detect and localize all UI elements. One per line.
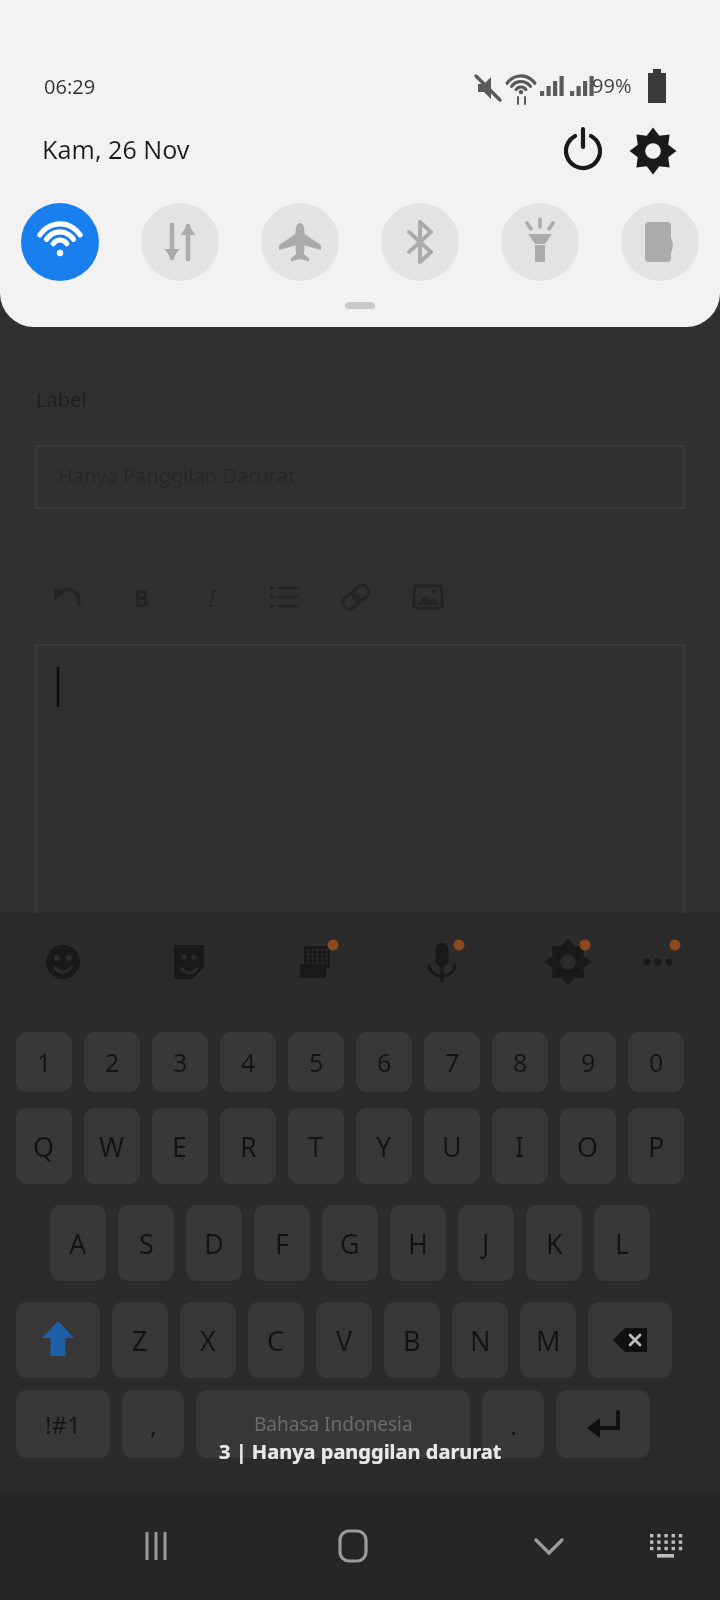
staticText: J <box>482 1225 490 1262</box>
button[interactable]: R <box>220 1108 276 1184</box>
button[interactable]: B <box>384 1302 440 1378</box>
button[interactable]: Backspace <box>588 1302 672 1378</box>
button[interactable]: X <box>180 1302 236 1378</box>
staticText: Q <box>33 1128 55 1165</box>
button[interactable]: Kam, 26 Nov <box>42 132 190 166</box>
button[interactable]: E <box>152 1108 208 1184</box>
button[interactable]: N <box>452 1302 508 1378</box>
button[interactable]: Shift <box>16 1302 100 1378</box>
button[interactable]: 2 <box>84 1032 140 1092</box>
staticText: K <box>546 1225 563 1262</box>
button[interactable]: Mobile data <box>141 203 219 281</box>
button[interactable]: F <box>254 1205 310 1281</box>
button[interactable]: 8 <box>492 1032 548 1092</box>
button[interactable]: M <box>520 1302 576 1378</box>
button[interactable]: 3 <box>152 1032 208 1092</box>
button[interactable]: 99% <box>592 72 632 99</box>
staticText: 3 <box>173 1045 188 1079</box>
button[interactable]: !#1 <box>16 1390 110 1458</box>
staticText: F <box>275 1225 290 1262</box>
button[interactable]: U <box>424 1108 480 1184</box>
button[interactable] <box>345 302 375 309</box>
button[interactable]: Hide keyboard <box>511 1508 587 1584</box>
button[interactable]: Bahasa Indonesia <box>196 1390 470 1458</box>
button[interactable]: Stickers <box>161 934 217 990</box>
button[interactable]: J <box>458 1205 514 1281</box>
button[interactable]: P <box>628 1108 684 1184</box>
staticText: . <box>510 1407 517 1442</box>
button[interactable]: Wi-Fi <box>21 203 99 281</box>
staticText: N <box>470 1322 491 1359</box>
button[interactable]: C <box>248 1302 304 1378</box>
staticText: I <box>515 1128 525 1165</box>
button[interactable]: Smart View <box>621 203 699 281</box>
staticText: S <box>139 1225 154 1262</box>
button[interactable]: Airplane mode <box>261 203 339 281</box>
button[interactable]: Emoji <box>35 934 91 990</box>
button[interactable]: 7 <box>424 1032 480 1092</box>
button[interactable]: Home <box>315 1508 391 1584</box>
staticText: R <box>240 1128 257 1165</box>
staticText: Y <box>376 1128 392 1165</box>
button[interactable]: Switch keyboard <box>627 1508 703 1584</box>
staticText: T <box>308 1128 324 1165</box>
button[interactable]: 5 <box>288 1032 344 1092</box>
button[interactable]: More options <box>630 934 686 990</box>
staticText: 5 <box>309 1045 324 1079</box>
staticText: 1 <box>37 1045 52 1079</box>
button[interactable]: W <box>84 1108 140 1184</box>
staticText: !#1 <box>45 1408 81 1441</box>
staticText: 4 <box>241 1045 256 1079</box>
staticText: Label <box>36 386 87 413</box>
button[interactable]: Bluetooth <box>381 203 459 281</box>
button[interactable]: Settings <box>625 123 681 179</box>
button[interactable]: 4 <box>220 1032 276 1092</box>
button[interactable]: . <box>482 1390 544 1458</box>
button[interactable]: D <box>186 1205 242 1281</box>
button[interactable]: G <box>322 1205 378 1281</box>
button[interactable]: Z <box>112 1302 168 1378</box>
staticText: Z <box>132 1322 148 1359</box>
button[interactable]: Q <box>16 1108 72 1184</box>
button[interactable]: T <box>288 1108 344 1184</box>
button[interactable]: I <box>492 1108 548 1184</box>
button[interactable]: 9 <box>560 1032 616 1092</box>
staticText: B <box>403 1322 421 1359</box>
button[interactable]: K <box>526 1205 582 1281</box>
button[interactable]: Voice input <box>414 934 470 990</box>
staticText: P <box>648 1128 665 1165</box>
staticText: 3 | Hanya panggilan darurat <box>219 1438 502 1465</box>
button[interactable]: Power off <box>555 123 611 179</box>
button[interactable]: A <box>50 1205 106 1281</box>
staticText: H <box>408 1225 429 1262</box>
button[interactable]: S <box>118 1205 174 1281</box>
staticText: 8 <box>513 1045 528 1079</box>
button[interactable]: 1 <box>16 1032 72 1092</box>
button[interactable]: Flashlight <box>501 203 579 281</box>
button[interactable]: Enter <box>556 1390 650 1458</box>
staticText: A <box>69 1225 87 1262</box>
staticText: X <box>200 1322 216 1359</box>
button[interactable]: B <box>130 581 154 613</box>
button[interactable]: Y <box>356 1108 412 1184</box>
staticText: 9 <box>581 1045 596 1079</box>
staticText: 99% <box>592 72 632 99</box>
button[interactable]: 06:29 <box>44 73 96 100</box>
button[interactable]: 6 <box>356 1032 412 1092</box>
staticText: W <box>99 1128 125 1165</box>
button[interactable]: Recents <box>118 1508 194 1584</box>
staticText: L <box>615 1225 630 1262</box>
staticText: G <box>340 1225 360 1262</box>
button[interactable]: O <box>560 1108 616 1184</box>
button[interactable]: H <box>390 1205 446 1281</box>
button[interactable]: V <box>316 1302 372 1378</box>
button[interactable]: L <box>594 1205 650 1281</box>
button[interactable]: Keyboard settings <box>540 934 596 990</box>
button[interactable]: GIF <box>288 934 344 990</box>
button[interactable]: 0 <box>628 1032 684 1092</box>
staticText: D <box>204 1225 224 1262</box>
